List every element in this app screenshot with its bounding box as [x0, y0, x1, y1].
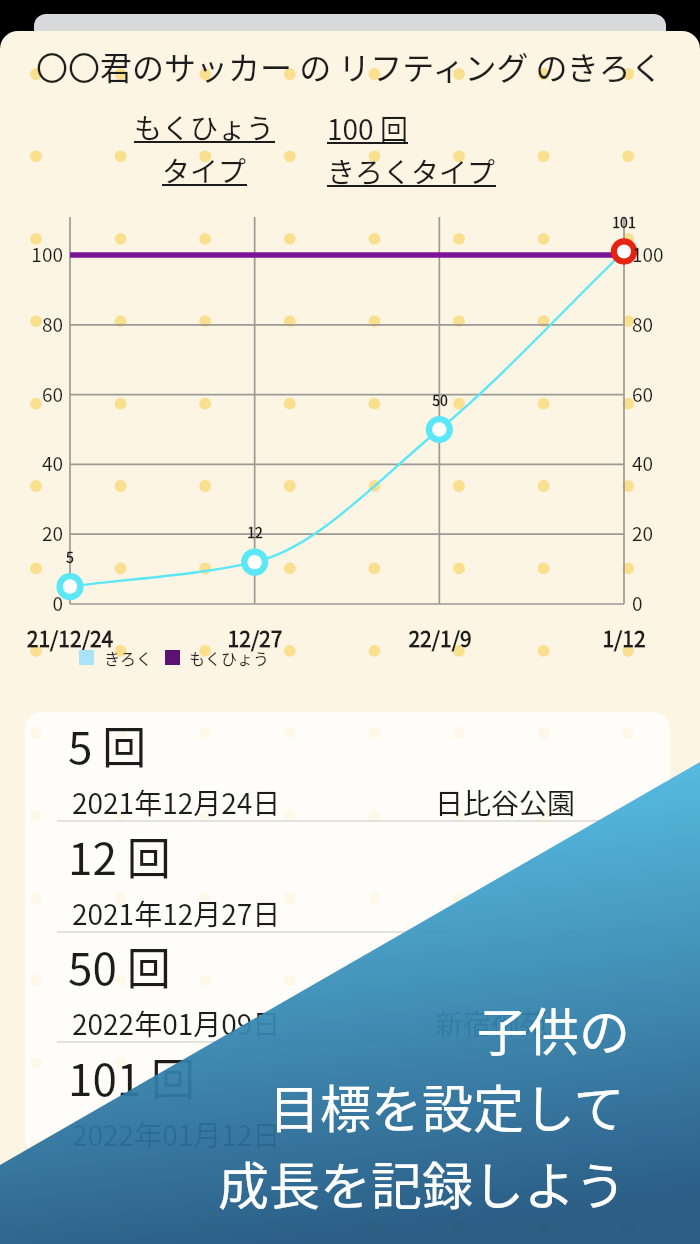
staticText: 5 — [40, 547, 100, 567]
staticText: 20 — [0, 519, 63, 547]
staticText: 12/27 — [185, 623, 325, 653]
staticText: 5 回 — [68, 713, 147, 777]
staticText: 2021年12月24日 — [72, 782, 281, 823]
staticText: 新宿御苑 — [435, 1003, 548, 1044]
staticText: 101 回 — [68, 1045, 196, 1109]
button[interactable]: 12 回 — [25, 823, 670, 934]
staticText: 成長を記録しよう — [218, 1146, 627, 1220]
staticText: 60 — [632, 380, 654, 408]
staticText: 日比谷公園 — [435, 782, 576, 823]
staticText: 50 回 — [68, 934, 171, 998]
staticText: 22/1/9 — [370, 623, 510, 653]
staticText: 子供の — [477, 992, 631, 1066]
staticText: 100 — [0, 240, 63, 268]
button[interactable]: 100 回 — [327, 113, 496, 199]
staticText: 101 — [594, 212, 654, 232]
staticText: 80 — [632, 310, 654, 338]
staticText: もくひょう — [134, 107, 275, 148]
button[interactable]: もくひょう — [134, 112, 275, 198]
staticText: 2021年12月27日 — [72, 893, 281, 934]
staticText: もくひょう — [189, 646, 270, 669]
button[interactable]: 5 回 — [25, 712, 670, 823]
button[interactable]: 101 回 — [25, 1044, 670, 1154]
staticText: 12 回 — [68, 824, 171, 888]
staticText: 100 — [632, 240, 664, 268]
staticText: 40 — [632, 449, 654, 477]
staticText: 40 — [0, 449, 63, 477]
staticText: 100 回 — [327, 108, 408, 149]
staticText: 目標を設定して — [269, 1069, 625, 1143]
button[interactable]: 50 回 — [25, 933, 670, 1044]
staticText: 〇〇君のサッカー の リフティング のきろく — [36, 43, 663, 89]
staticText: 80 — [0, 310, 63, 338]
staticText: タイプ — [162, 150, 247, 191]
staticText: 0 — [632, 589, 643, 617]
staticText: 21/12/24 — [0, 623, 140, 653]
staticText: 12 — [225, 522, 285, 542]
staticText: 2022年01月12日 — [72, 1114, 281, 1154]
staticText: 60 — [0, 380, 63, 408]
staticText: 1/12 — [554, 623, 694, 653]
staticText: 0 — [0, 589, 63, 617]
staticText: 50 — [410, 390, 470, 410]
staticText: 2022年01月09日 — [72, 1003, 281, 1044]
staticText: きろく — [104, 646, 153, 669]
staticText: 20 — [632, 519, 654, 547]
staticText: きろくタイプ — [327, 151, 496, 192]
